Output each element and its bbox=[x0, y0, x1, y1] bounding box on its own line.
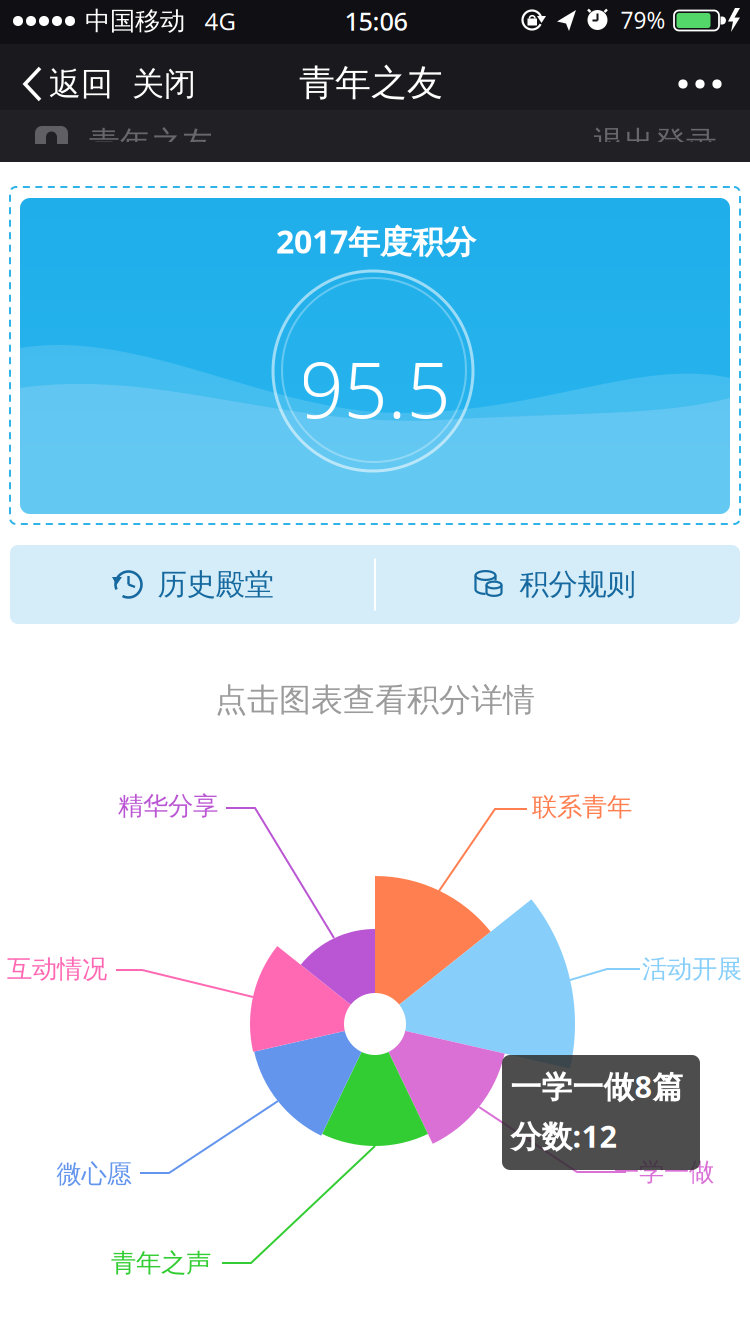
staticText: 联系青年 bbox=[532, 791, 632, 822]
staticText: 分数:12 bbox=[510, 1115, 617, 1156]
staticText: 15:06 bbox=[344, 4, 407, 38]
staticText: 一学一做8篇 bbox=[510, 1066, 683, 1106]
staticText: 4G bbox=[204, 5, 235, 37]
staticText: 青年之声 bbox=[111, 1247, 211, 1278]
staticText: 退出登录 bbox=[593, 124, 717, 162]
button[interactable]: 积分规则 bbox=[374, 545, 734, 624]
staticText: 关闭 bbox=[132, 64, 196, 104]
staticText: 精华分享 bbox=[118, 790, 218, 821]
staticText: 95.5 bbox=[299, 337, 450, 439]
button[interactable]: 查看积分详情 bbox=[175, 824, 575, 1224]
staticText: 79% bbox=[620, 5, 665, 35]
staticText: 积分规则 bbox=[519, 566, 635, 602]
staticText: 历史殿堂 bbox=[157, 566, 273, 602]
staticText: 2017年度积分 bbox=[276, 220, 476, 262]
staticText: 互动情况 bbox=[7, 953, 107, 984]
staticText: 青年之友 bbox=[89, 124, 213, 162]
staticText: 青年之友 bbox=[299, 61, 443, 105]
staticText: 点击图表查看积分详情 bbox=[215, 680, 535, 720]
staticText: 微心愿 bbox=[56, 1158, 131, 1189]
button[interactable]: 退出登录 bbox=[593, 124, 719, 142]
staticText: 活动开展 bbox=[642, 953, 742, 984]
staticText: 返回 bbox=[49, 64, 113, 104]
button[interactable]: More bbox=[653, 62, 747, 106]
button[interactable]: 历史殿堂 bbox=[12, 545, 372, 624]
staticText: 中国移动 bbox=[85, 5, 185, 36]
button[interactable]: 返回 bbox=[23, 64, 113, 104]
button[interactable]: 关闭 bbox=[132, 64, 196, 104]
staticText: 一学一做 bbox=[614, 1156, 714, 1187]
